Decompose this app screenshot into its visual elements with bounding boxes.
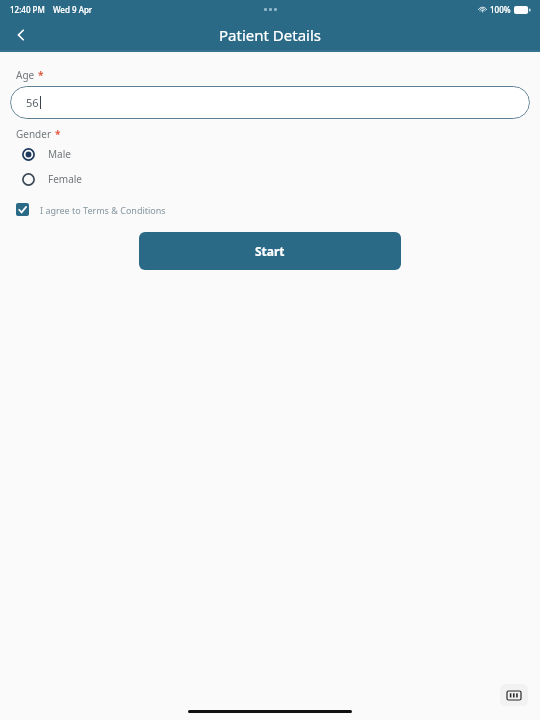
- staticText: Gender: [16, 127, 52, 141]
- button[interactable]: Keyboard: [500, 684, 528, 706]
- button[interactable]: 56: [10, 86, 530, 119]
- staticText: Male: [48, 147, 71, 161]
- button[interactable]: Start: [139, 232, 401, 270]
- staticText: Wed 9 Apr: [53, 4, 93, 15]
- staticText: *: [55, 127, 61, 141]
- staticText: 12:40 PM: [10, 4, 45, 15]
- button[interactable]: Female: [22, 172, 83, 186]
- button[interactable]: Back: [4, 18, 38, 52]
- staticText: *: [38, 68, 44, 82]
- staticText: 100%: [490, 4, 511, 15]
- staticText: Start: [255, 243, 285, 259]
- button[interactable]: I agree to Terms & Conditions: [16, 203, 166, 216]
- button[interactable]: Male: [22, 147, 71, 161]
- staticText: Patient Details: [219, 25, 321, 45]
- staticText: 56: [26, 95, 39, 110]
- staticText: I agree to Terms & Conditions: [40, 204, 166, 216]
- staticText: Female: [48, 172, 83, 186]
- staticText: Age: [16, 68, 35, 82]
